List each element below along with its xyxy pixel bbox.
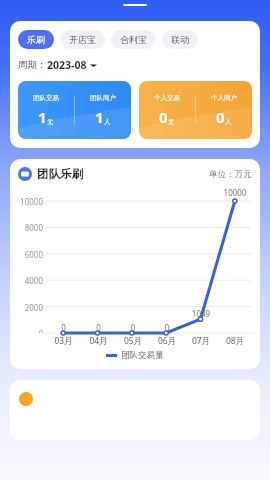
staticText: 1 bbox=[95, 107, 104, 127]
staticText: 0 bbox=[150, 322, 184, 333]
other: 团队乐刷图标 bbox=[18, 167, 32, 181]
button[interactable]: 个人乐刷图标 bbox=[10, 380, 260, 440]
staticText: 联动 bbox=[171, 34, 189, 45]
staticText: 0 bbox=[216, 107, 225, 127]
staticText: 4000 bbox=[18, 275, 43, 286]
staticText: 合利宝 bbox=[120, 34, 147, 45]
staticText: 单位：万元 bbox=[209, 169, 252, 180]
staticText: 个人交易 bbox=[154, 94, 180, 102]
staticText: 04月 bbox=[81, 335, 116, 347]
staticText: 0 bbox=[46, 322, 81, 333]
staticText: 元 bbox=[168, 118, 175, 126]
button[interactable]: 乐刷 bbox=[18, 30, 54, 49]
staticText: 0 bbox=[18, 328, 43, 333]
button[interactable]: 个人交易 bbox=[139, 81, 252, 139]
staticText: 团队商户 bbox=[90, 94, 116, 102]
staticText: 8000 bbox=[18, 222, 43, 233]
staticText: 团队交易量 bbox=[121, 350, 164, 361]
staticText: 10000 bbox=[18, 196, 43, 207]
staticText: 个人商户 bbox=[211, 94, 237, 102]
staticText: 05月 bbox=[116, 335, 150, 347]
button[interactable]: 开店宝 bbox=[60, 30, 105, 49]
staticText: 0 bbox=[159, 107, 168, 127]
staticText: 03月 bbox=[46, 335, 81, 347]
staticText: 1049 bbox=[184, 308, 218, 319]
staticText: 乐刷 bbox=[27, 34, 45, 45]
button[interactable]: 周期： bbox=[18, 58, 97, 72]
other: 个人乐刷图标 bbox=[19, 392, 33, 406]
staticText: 元 bbox=[47, 118, 54, 126]
staticText: 人 bbox=[104, 118, 111, 126]
staticText: 07月 bbox=[184, 335, 218, 347]
staticText: 08月 bbox=[218, 335, 252, 347]
staticText: 0 bbox=[81, 322, 116, 333]
staticText: 开店宝 bbox=[69, 34, 96, 45]
staticText: 人 bbox=[225, 118, 232, 126]
button[interactable]: 联动 bbox=[162, 30, 198, 49]
button[interactable]: 团队交易 bbox=[18, 81, 131, 139]
staticText: 团队乐刷 bbox=[37, 167, 83, 181]
button[interactable]: 合利宝 bbox=[111, 30, 156, 49]
staticText: 06月 bbox=[150, 335, 184, 347]
staticText: 10000 bbox=[218, 187, 252, 198]
staticText: 0 bbox=[116, 322, 150, 333]
staticText: 1 bbox=[38, 107, 47, 127]
staticText: 2000 bbox=[18, 302, 43, 313]
staticText: 2023-08 bbox=[47, 58, 87, 72]
staticText: 6000 bbox=[18, 249, 43, 260]
staticText: 团队交易 bbox=[33, 94, 59, 102]
staticText: 周期： bbox=[18, 59, 47, 71]
